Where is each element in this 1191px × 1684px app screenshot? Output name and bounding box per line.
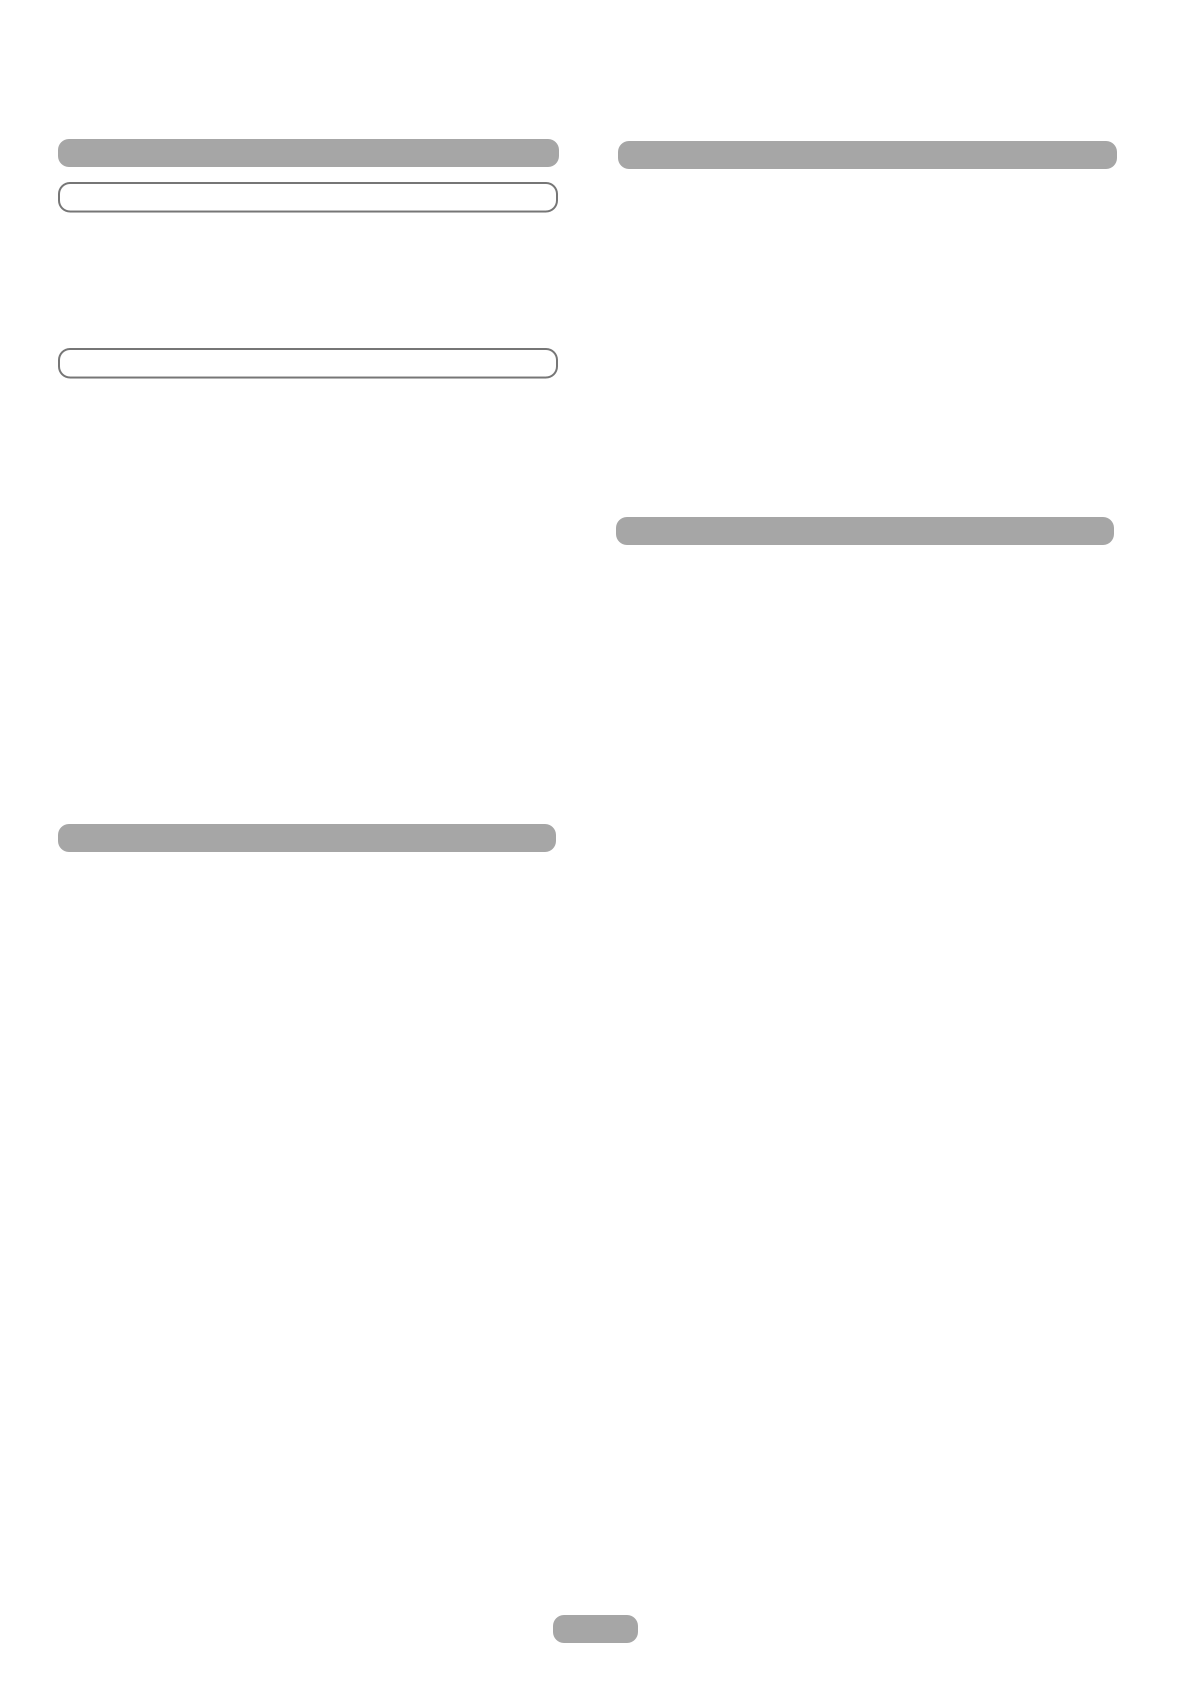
button[interactable]: First text field [59,183,557,211]
button[interactable]: Second text field [59,349,557,377]
